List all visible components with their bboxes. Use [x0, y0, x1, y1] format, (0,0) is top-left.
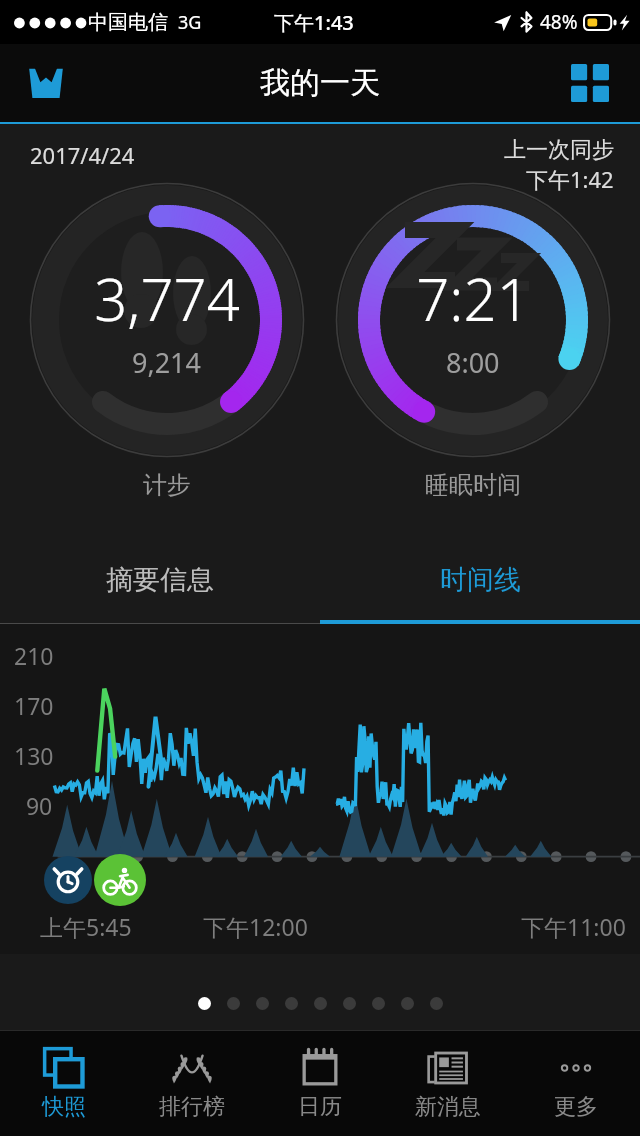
- staticText: 3G: [178, 10, 202, 35]
- staticText: 下午11:00: [521, 911, 626, 942]
- staticText: 新消息: [415, 1093, 481, 1121]
- button[interactable]: 摘要信息: [0, 536, 320, 624]
- staticText: 7:21: [416, 259, 530, 338]
- staticText: 8:00: [446, 344, 500, 381]
- staticText: 90: [14, 790, 53, 821]
- button[interactable]: [372, 997, 385, 1010]
- staticText: 排行榜: [159, 1093, 225, 1121]
- button[interactable]: 3,774: [29, 182, 305, 458]
- staticText: 210: [14, 640, 54, 671]
- staticText: 日历: [298, 1093, 342, 1121]
- button[interactable]: 菜单: [562, 55, 618, 111]
- button[interactable]: [227, 997, 240, 1010]
- staticText: 3,774: [94, 259, 240, 338]
- button[interactable]: 收件箱: [18, 55, 74, 111]
- staticText: 130: [14, 740, 54, 771]
- button[interactable]: [430, 997, 443, 1010]
- staticText: 下午12:00: [203, 911, 308, 942]
- staticText: 快照: [42, 1093, 86, 1121]
- staticText: 170: [14, 690, 54, 721]
- button[interactable]: [401, 997, 414, 1010]
- button[interactable]: [256, 997, 269, 1010]
- staticText: 我的一天: [260, 64, 380, 102]
- button[interactable]: 更多: [512, 1031, 640, 1136]
- button[interactable]: 快照: [0, 1031, 128, 1136]
- staticText: 中国电信: [88, 10, 168, 35]
- staticText: 睡眠时间: [425, 470, 521, 500]
- staticText: 计步: [143, 470, 191, 500]
- staticText: 时间线: [440, 563, 521, 597]
- button[interactable]: 时间线: [320, 536, 640, 624]
- staticText: 48%: [540, 9, 578, 35]
- staticText: 下午1:42: [526, 164, 614, 194]
- button[interactable]: [285, 997, 298, 1010]
- staticText: 上一次同步: [504, 136, 614, 164]
- button[interactable]: 新消息: [384, 1031, 512, 1136]
- staticText: 2017/4/24: [30, 140, 135, 170]
- button[interactable]: 排行榜: [128, 1031, 256, 1136]
- button[interactable]: [314, 997, 327, 1010]
- staticText: 下午1:43: [274, 9, 354, 36]
- button[interactable]: [343, 997, 356, 1010]
- button[interactable]: [198, 997, 211, 1010]
- staticText: 更多: [554, 1093, 598, 1121]
- staticText: 上午5:45: [40, 911, 132, 942]
- staticText: 摘要信息: [106, 563, 214, 597]
- button[interactable]: 闹钟: [44, 856, 92, 904]
- button[interactable]: 日历: [256, 1031, 384, 1136]
- button[interactable]: 7:21: [335, 182, 611, 458]
- staticText: 9,214: [132, 344, 202, 381]
- button[interactable]: 骑行: [94, 854, 146, 906]
